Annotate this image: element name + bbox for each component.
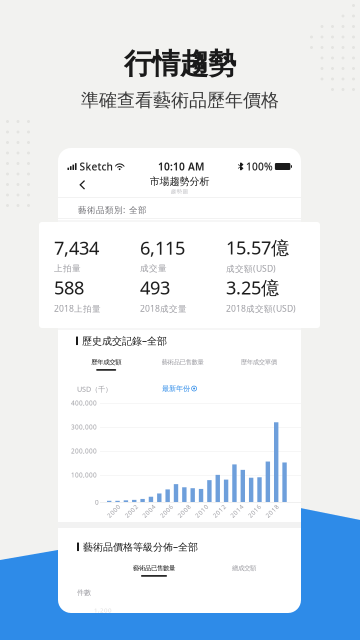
button[interactable]: 最新年份	[162, 384, 197, 393]
staticText: 2018成交額(USD)	[226, 303, 296, 314]
staticText: 1,200	[94, 606, 112, 614]
staticText: 2010	[194, 507, 210, 515]
staticText: 最新年份	[162, 384, 190, 393]
staticText: 歷年成交單價	[241, 358, 277, 366]
staticText: 成交額(USD)	[226, 263, 276, 274]
staticText: 歷史成交記錄–全部	[82, 334, 167, 348]
staticText: 493	[140, 275, 170, 300]
staticText: 3.25億	[226, 275, 279, 300]
staticText: 200,000	[71, 447, 97, 455]
staticText: 100,000	[71, 471, 97, 479]
button[interactable]: 藝術品已售數量	[109, 564, 199, 577]
staticText: 2014	[229, 507, 245, 515]
button[interactable]: 總成交額	[199, 564, 289, 577]
staticText: 6,115	[140, 235, 185, 260]
staticText: 總成交額	[232, 564, 256, 572]
button[interactable]: 歷年成交額	[68, 358, 144, 371]
staticText: 2008	[176, 507, 192, 515]
staticText: 2018	[264, 507, 280, 515]
staticText: 300,000	[71, 423, 97, 431]
staticText: 588	[54, 275, 84, 300]
button[interactable]: 歷年成交單價	[221, 358, 297, 371]
staticText: 藝術品價格等級分佈–全部	[83, 540, 198, 554]
staticText: 上拍量	[54, 263, 81, 274]
button[interactable]: Back	[70, 175, 94, 195]
staticText: 2004	[141, 507, 157, 515]
staticText: 2012	[211, 507, 227, 515]
staticText: 趨勢圖	[170, 188, 188, 195]
staticText: Sketch	[79, 160, 112, 173]
staticText: 15.57億	[226, 235, 289, 260]
staticText: 400,000	[71, 399, 97, 407]
staticText: 7,434	[54, 235, 99, 260]
staticText: 2006	[159, 507, 175, 515]
staticText: 市場趨勢分析	[149, 175, 209, 188]
staticText: 2002	[123, 507, 139, 515]
staticText: 成交量	[140, 263, 167, 274]
staticText: 件數	[77, 588, 91, 597]
staticText: 2018成交量	[140, 303, 187, 314]
staticText: USD（千）	[77, 384, 112, 394]
staticText: 2000	[106, 507, 122, 515]
staticText: 2016	[247, 507, 263, 515]
staticText: 藝術品已售數量	[161, 358, 203, 366]
staticText: 0	[95, 498, 99, 507]
staticText: 歷年成交額	[91, 358, 121, 366]
staticText: 行情趨勢	[124, 46, 236, 82]
staticText: 100%	[246, 160, 273, 173]
staticText: 10:10 AM	[158, 160, 204, 173]
staticText: 2018上拍量	[54, 303, 101, 314]
staticText: 藝術品已售數量	[133, 564, 175, 572]
staticText: 準確查看藝術品歷年價格	[81, 89, 279, 112]
staticText: 藝術品類別: 全部	[78, 204, 147, 216]
button[interactable]: 藝術品已售數量	[144, 358, 221, 371]
